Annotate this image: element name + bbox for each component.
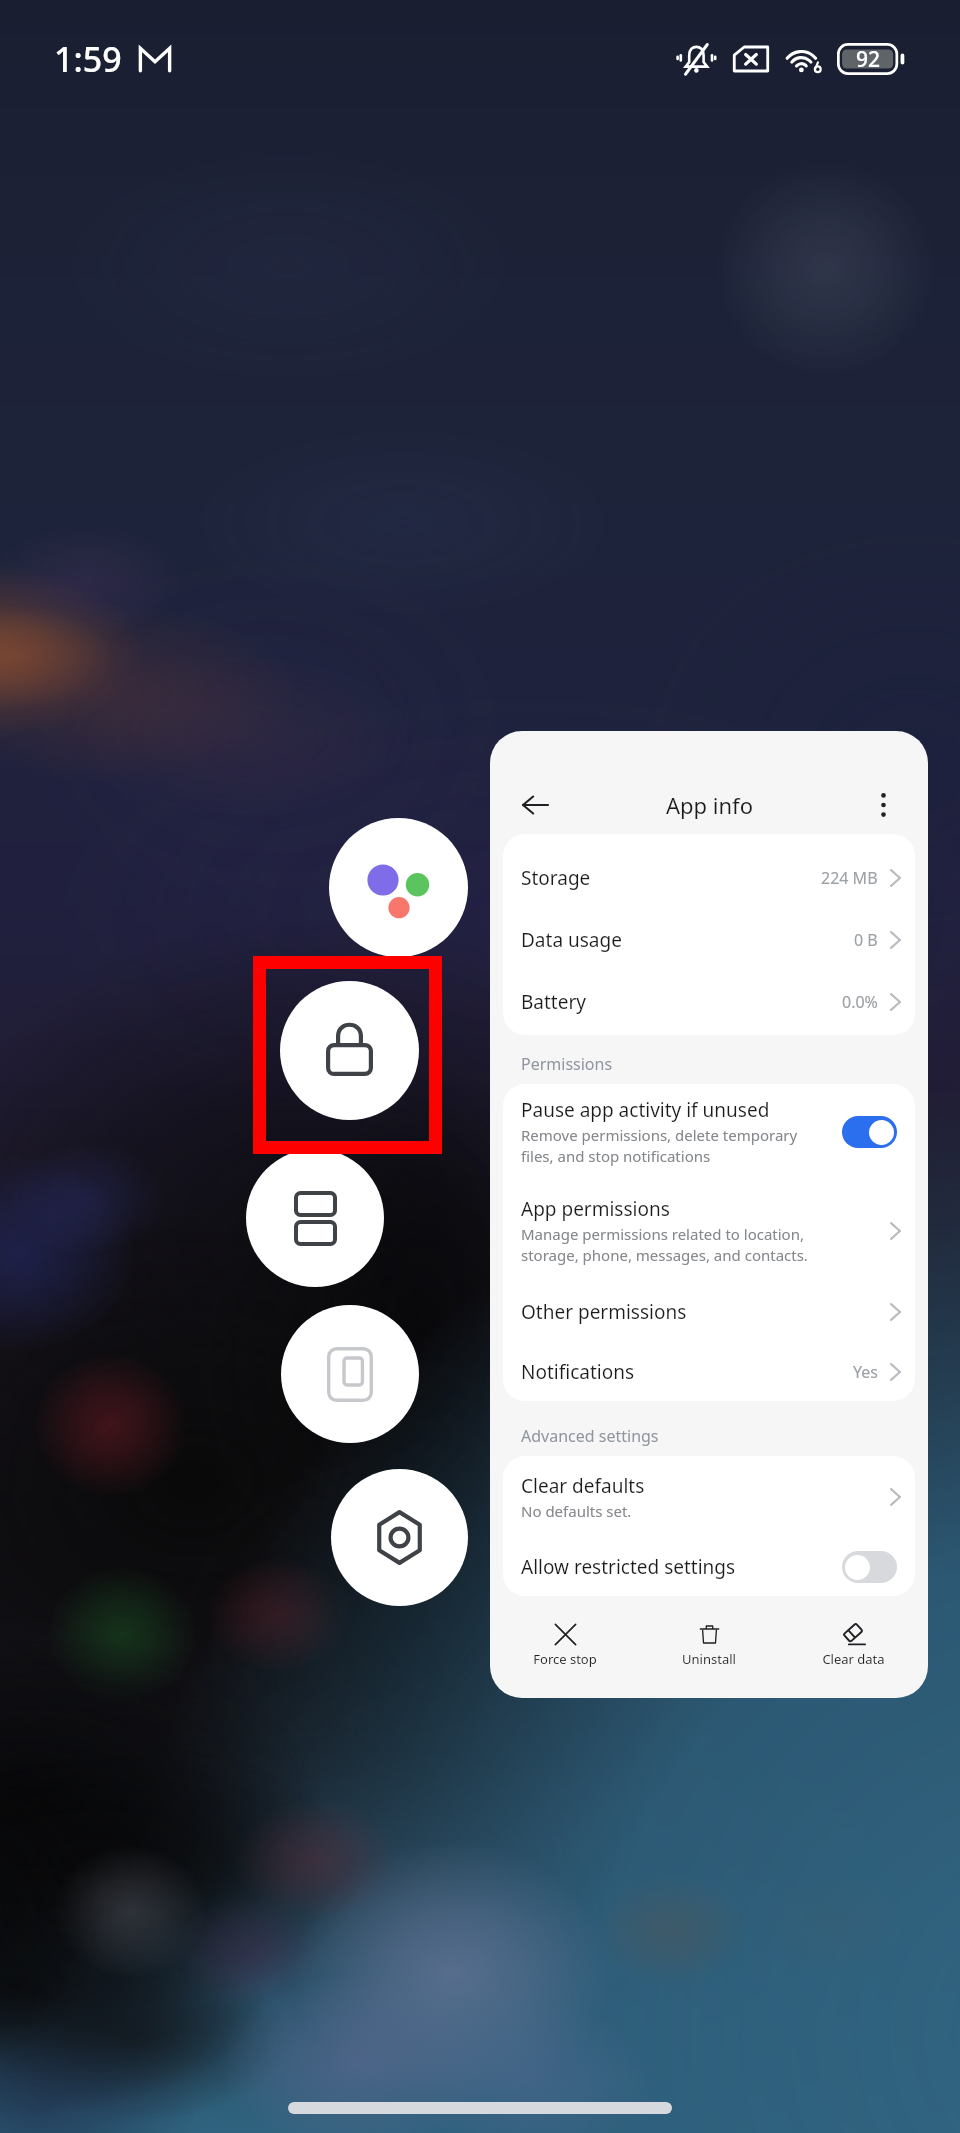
button[interactable] [842,1116,897,1148]
staticText: 224 MB [821,867,878,889]
button[interactable]: Notifications [503,1343,915,1401]
button[interactable]: More options [859,781,907,829]
button[interactable]: Floating window [281,1305,419,1443]
staticText: Notifications [521,1359,635,1385]
button[interactable]: Data usage [503,909,915,971]
button[interactable]: Battery [503,971,915,1033]
button[interactable]: Storage [503,847,915,909]
button[interactable]: App lock [280,981,419,1120]
staticText: Other permissions [521,1299,687,1325]
staticText: 1:59 [54,36,122,82]
button[interactable]: Force stop [505,1623,625,1668]
button[interactable]: App settings [331,1469,468,1606]
staticText: Allow restricted settings [521,1554,736,1580]
staticText: Data usage [521,927,622,953]
button[interactable]: Clear data [793,1623,913,1668]
staticText: Yes [853,1361,878,1383]
staticText: Remove permissions, delete temporary fil… [521,1125,798,1167]
staticText: App info [666,790,753,820]
staticText: Force stop [533,1650,597,1668]
button[interactable]: Google Assistant [329,818,468,957]
button[interactable]: Other permissions [503,1281,915,1343]
staticText: 0 B [854,929,878,951]
staticText: No defaults set. [521,1501,632,1521]
staticText: Clear defaults [521,1473,645,1499]
staticText: Uninstall [682,1650,736,1668]
staticText: Battery [521,989,586,1015]
staticText: 92 [856,45,881,74]
button[interactable]: Uninstall [649,1623,769,1668]
button[interactable]: Pause app activity if unused [503,1084,915,1180]
button[interactable]: Allow restricted settings [503,1537,915,1596]
button[interactable]: Back [509,779,561,831]
staticText: Advanced settings [521,1425,659,1447]
button[interactable]: Clear defaults [503,1456,915,1537]
staticText: Storage [521,865,591,891]
staticText: Permissions [521,1053,613,1075]
button[interactable] [842,1551,897,1583]
staticText: Manage permissions related to location, … [521,1224,808,1266]
button[interactable]: App permissions [503,1180,915,1281]
button[interactable]: Split screen [246,1149,384,1287]
staticText: Clear data [822,1650,885,1668]
staticText: Pause app activity if unused [521,1097,770,1123]
staticText: App permissions [521,1196,670,1222]
staticText: 0.0% [842,991,878,1013]
